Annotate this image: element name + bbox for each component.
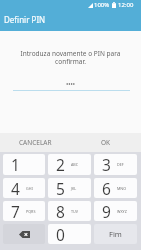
staticText: 3: [102, 154, 111, 175]
staticText: TUV: [71, 209, 78, 214]
staticText: 12:00: [118, 1, 134, 9]
staticText: 4: [11, 178, 20, 198]
button[interactable]: 0: [48, 224, 91, 244]
staticText: 6: [102, 178, 111, 198]
staticText: 7: [11, 201, 20, 221]
staticText: 2: [56, 154, 65, 175]
staticText: Fim: [109, 229, 122, 239]
button[interactable]: Backspace: [3, 224, 45, 244]
staticText: WXYZ: [117, 209, 127, 214]
button[interactable]: CANCELAR: [0, 133, 70, 152]
staticText: 100%: [94, 1, 110, 9]
button[interactable]: Fim: [94, 224, 137, 244]
button[interactable]: OK: [70, 133, 141, 152]
staticText: 0: [56, 224, 65, 244]
staticText: OK: [101, 138, 111, 147]
staticText: Introduza novamente o PIN para confirmar…: [14, 49, 127, 66]
button[interactable]: 5: [48, 178, 91, 198]
button[interactable]: 2: [48, 154, 91, 175]
button[interactable]: 3: [94, 154, 137, 175]
button[interactable]: 8: [48, 201, 91, 221]
button[interactable]: 1: [3, 154, 45, 175]
button[interactable]: 9: [94, 201, 137, 221]
staticText: 8: [56, 201, 65, 221]
button[interactable]: 4: [3, 178, 45, 198]
staticText: ABC: [71, 162, 79, 167]
staticText: GHI: [26, 186, 33, 191]
button[interactable]: 6: [94, 178, 137, 198]
staticText: CANCELAR: [19, 138, 52, 147]
staticText: 9: [102, 201, 111, 221]
button[interactable]: 7: [3, 201, 45, 221]
staticText: MNO: [117, 186, 127, 191]
staticText: 1: [11, 154, 20, 175]
staticText: PQRS: [26, 209, 36, 214]
staticText: 5: [56, 178, 65, 198]
staticText: JKL: [71, 186, 77, 191]
staticText: DEF: [117, 162, 124, 167]
staticText: Definir PIN: [4, 14, 46, 25]
